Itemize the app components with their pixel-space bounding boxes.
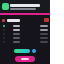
button[interactable] (3, 36, 49, 40)
button[interactable] (15, 56, 35, 62)
button[interactable] (3, 24, 49, 28)
button[interactable] (3, 40, 49, 44)
button[interactable]: Info (32, 49, 36, 53)
button[interactable] (14, 49, 30, 53)
button[interactable] (3, 28, 49, 32)
button[interactable]: Stop (44, 18, 49, 22)
button[interactable]: App icon (2, 3, 9, 10)
button[interactable]: Stop (2, 18, 50, 22)
button[interactable] (3, 32, 49, 36)
